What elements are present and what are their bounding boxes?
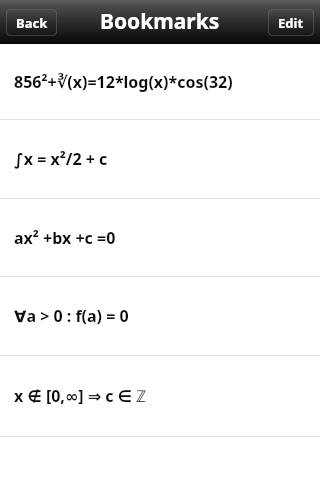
staticText: Edit [278,14,304,32]
staticText: ax² +bx +c =0 [14,227,116,249]
button[interactable]: ∀a > 0 : f(a) = 0 [0,277,320,355]
other: Edit [268,9,314,36]
button[interactable]: 856²+∛(x)=12*log(x)*cos(32) [0,44,320,119]
staticText: ∫x = x²/2 + c [14,148,108,170]
staticText: 856²+∛(x)=12*log(x)*cos(32) [14,71,233,93]
other: Back [6,9,57,36]
button[interactable]: Edit [268,9,314,36]
button[interactable]: x ∉ [0,∞] ⇒ c ∈ ℤ [0,356,320,436]
staticText: Back [16,14,48,32]
staticText: Bookmarks [100,7,220,36]
staticText: ∀a > 0 : f(a) = 0 [14,305,129,327]
button[interactable]: ∫x = x²/2 + c [0,120,320,198]
button[interactable]: Back [6,9,57,36]
button[interactable]: ax² +bx +c =0 [0,199,320,276]
staticText: x ∉ [0,∞] ⇒ c ∈ ℤ [14,385,147,407]
